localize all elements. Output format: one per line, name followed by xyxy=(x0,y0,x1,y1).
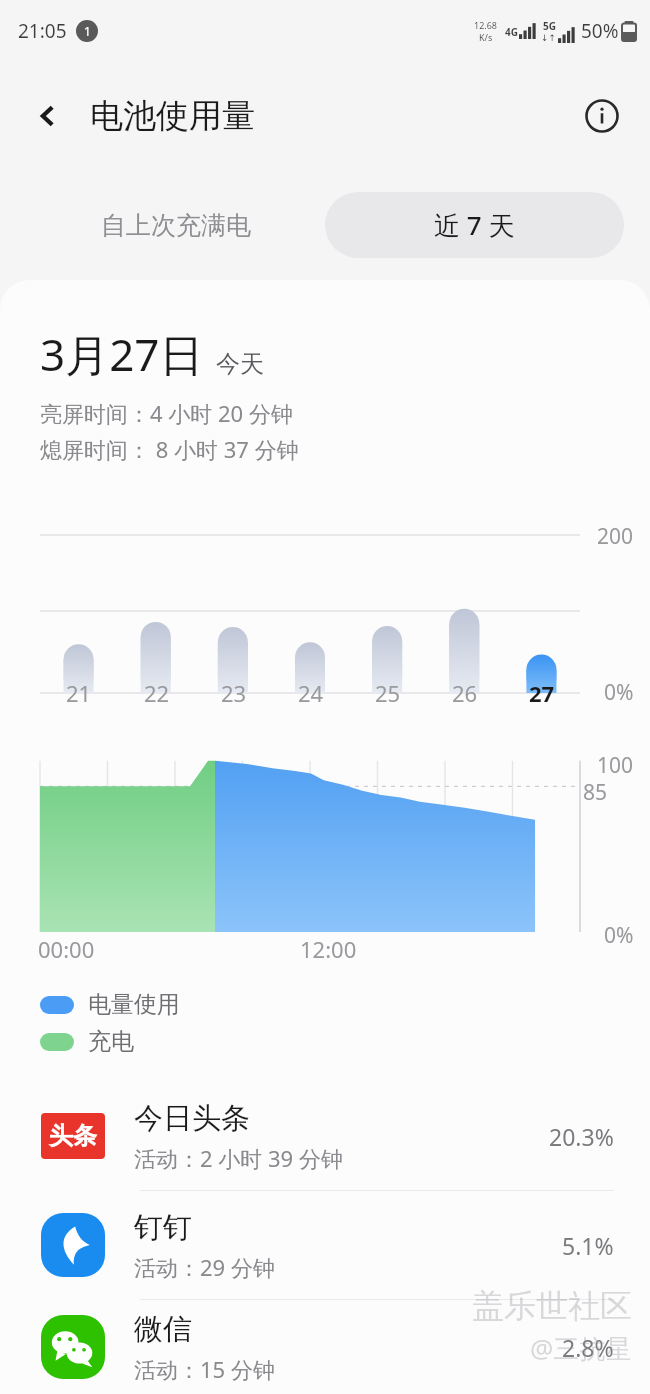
staticText: 活动：15 分钟 xyxy=(134,1354,275,1384)
staticText: 100 xyxy=(597,751,634,780)
staticText: 近 7 天 xyxy=(434,207,515,243)
staticText: 今日头条 xyxy=(134,1100,250,1137)
staticText: 3月27日 xyxy=(40,324,204,384)
staticText: 4G xyxy=(505,25,518,39)
staticText: ↓↑ xyxy=(541,33,557,43)
staticText: 21:05 xyxy=(18,18,67,44)
staticText: 22 xyxy=(144,678,170,708)
staticText: 活动：2 小时 39 分钟 xyxy=(134,1143,343,1173)
staticText: @三抗星 xyxy=(530,1330,632,1366)
staticText: 电池使用量 xyxy=(90,95,255,137)
button[interactable]: Info xyxy=(578,92,626,140)
staticText: 0% xyxy=(604,678,634,707)
staticText: 5G xyxy=(543,19,556,33)
staticText: 活动：29 分钟 xyxy=(134,1252,275,1282)
staticText: 20.3% xyxy=(549,1121,614,1152)
button[interactable]: 自上次充满电 xyxy=(26,192,325,258)
staticText: 亮屏时间：4 小时 20 分钟 xyxy=(40,398,293,428)
staticText: 27 xyxy=(529,678,555,708)
staticText: 5.1% xyxy=(562,1230,614,1261)
staticText: 23 xyxy=(221,678,247,708)
staticText: 2.8% xyxy=(562,1332,614,1363)
staticText: 12.68 xyxy=(474,19,498,31)
staticText: 26 xyxy=(452,678,478,708)
staticText: 今天 xyxy=(216,349,264,379)
staticText: 熄屏时间： 8 小时 37 分钟 xyxy=(40,434,299,464)
staticText: 00:00 xyxy=(38,934,95,964)
staticText: 0% xyxy=(604,921,634,950)
staticText: 自上次充满电 xyxy=(101,210,251,241)
button[interactable]: 头条 xyxy=(0,1082,650,1191)
staticText: 200 xyxy=(597,522,634,551)
staticText: K/s xyxy=(479,31,493,43)
staticText: 1 xyxy=(84,23,91,39)
staticText: 12:00 xyxy=(300,934,357,964)
staticText: 21 xyxy=(66,678,92,708)
staticText: 50% xyxy=(581,18,619,44)
button[interactable]: 微信 xyxy=(0,1300,650,1394)
staticText: 电量使用 xyxy=(88,990,180,1019)
staticText: 盖乐世社区 xyxy=(472,1286,632,1326)
staticText: 25 xyxy=(375,678,401,708)
button[interactable]: 钉钉 xyxy=(0,1191,650,1300)
staticText: 钉钉 xyxy=(134,1209,192,1246)
staticText: 头条 xyxy=(49,1121,97,1151)
staticText: 微信 xyxy=(134,1311,192,1348)
button[interactable]: 近 7 天 xyxy=(325,192,624,258)
button[interactable]: Back xyxy=(26,94,70,138)
staticText: 充电 xyxy=(88,1027,134,1056)
staticText: 24 xyxy=(298,678,324,708)
staticText: 85 xyxy=(583,778,608,807)
